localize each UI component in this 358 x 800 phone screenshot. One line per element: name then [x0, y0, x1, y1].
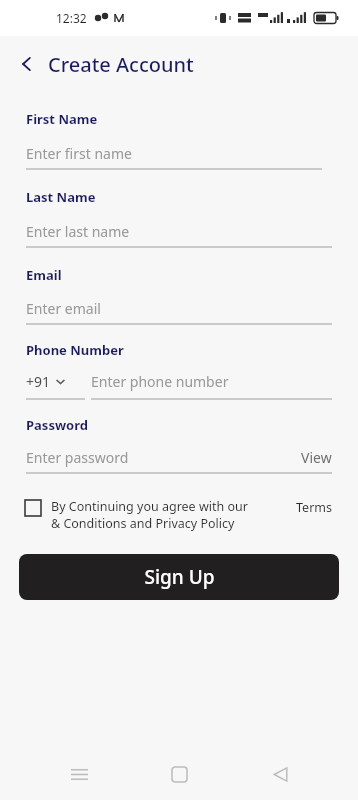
button[interactable]: Enter email	[26, 299, 332, 325]
button[interactable]: Back	[10, 47, 44, 81]
staticText: Enter phone number	[91, 372, 229, 391]
button[interactable]: View	[301, 448, 332, 467]
staticText: Password	[26, 416, 88, 434]
button[interactable]: Enter last name	[26, 222, 332, 248]
staticText: +91	[26, 372, 51, 391]
button[interactable]: Home	[157, 752, 201, 796]
staticText: Create Account	[48, 51, 194, 78]
staticText: By Continuing you agree with our & Condi…	[51, 498, 296, 532]
button[interactable]: Accept terms checkbox	[25, 500, 41, 516]
button[interactable]: Select country code	[26, 372, 85, 400]
staticText: View	[301, 448, 332, 467]
button[interactable]: Terms	[296, 499, 332, 516]
staticText: Enter email	[26, 299, 101, 318]
staticText: Sign Up	[144, 564, 215, 590]
button[interactable]: Enter phone number	[91, 372, 332, 400]
staticText: 12:32	[56, 10, 87, 26]
staticText: Last Name	[26, 188, 96, 206]
staticText: Enter last name	[26, 222, 130, 241]
button[interactable]: Recent apps	[57, 752, 101, 796]
staticText: Enter first name	[26, 144, 132, 163]
button[interactable]: Sign Up	[19, 554, 339, 600]
button[interactable]: Back	[258, 752, 302, 796]
staticText: Email	[26, 266, 62, 284]
staticText: Phone Number	[26, 341, 124, 359]
button[interactable]: Enter first name	[26, 144, 322, 170]
staticText: First Name	[26, 110, 98, 128]
button[interactable]: Enter password	[26, 448, 129, 467]
staticText: Terms	[296, 499, 332, 516]
